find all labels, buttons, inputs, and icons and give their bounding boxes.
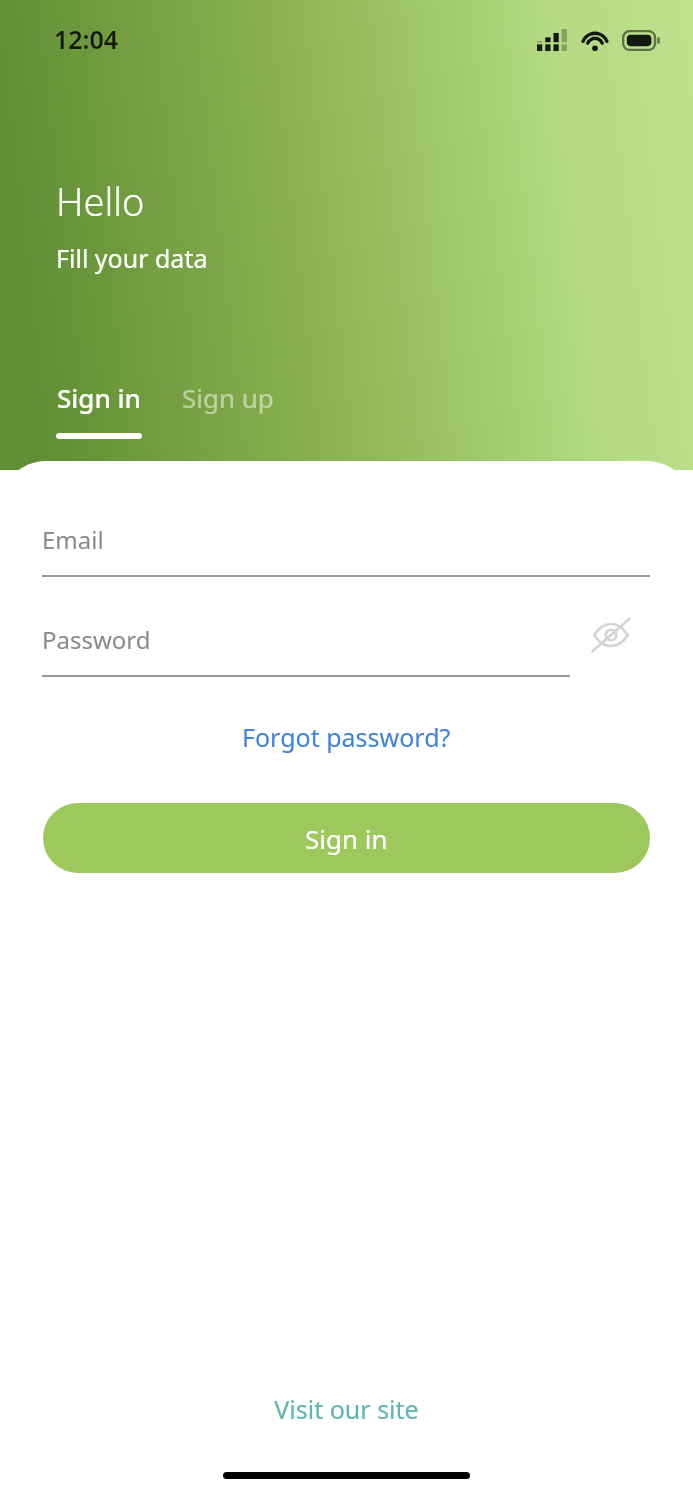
button[interactable]: Sign in	[43, 803, 650, 873]
staticText: Hello	[56, 175, 145, 227]
staticText: Fill your data	[56, 241, 208, 275]
staticText: Sign in	[57, 380, 141, 415]
staticText: Sign up	[182, 380, 274, 415]
button[interactable]: Show password	[583, 607, 639, 663]
staticText: Forgot password?	[242, 720, 451, 754]
staticText: 12:04	[54, 22, 119, 56]
staticText: Visit our site	[274, 1392, 419, 1426]
staticText: Password	[42, 623, 151, 656]
button[interactable]: Forgot password?	[232, 714, 461, 760]
button[interactable]: Sign in	[56, 380, 142, 439]
staticText: Sign in	[305, 821, 388, 856]
button[interactable]: Sign up	[182, 380, 274, 415]
staticText: Email	[42, 523, 104, 556]
button[interactable]: Visit our site	[262, 1386, 431, 1432]
